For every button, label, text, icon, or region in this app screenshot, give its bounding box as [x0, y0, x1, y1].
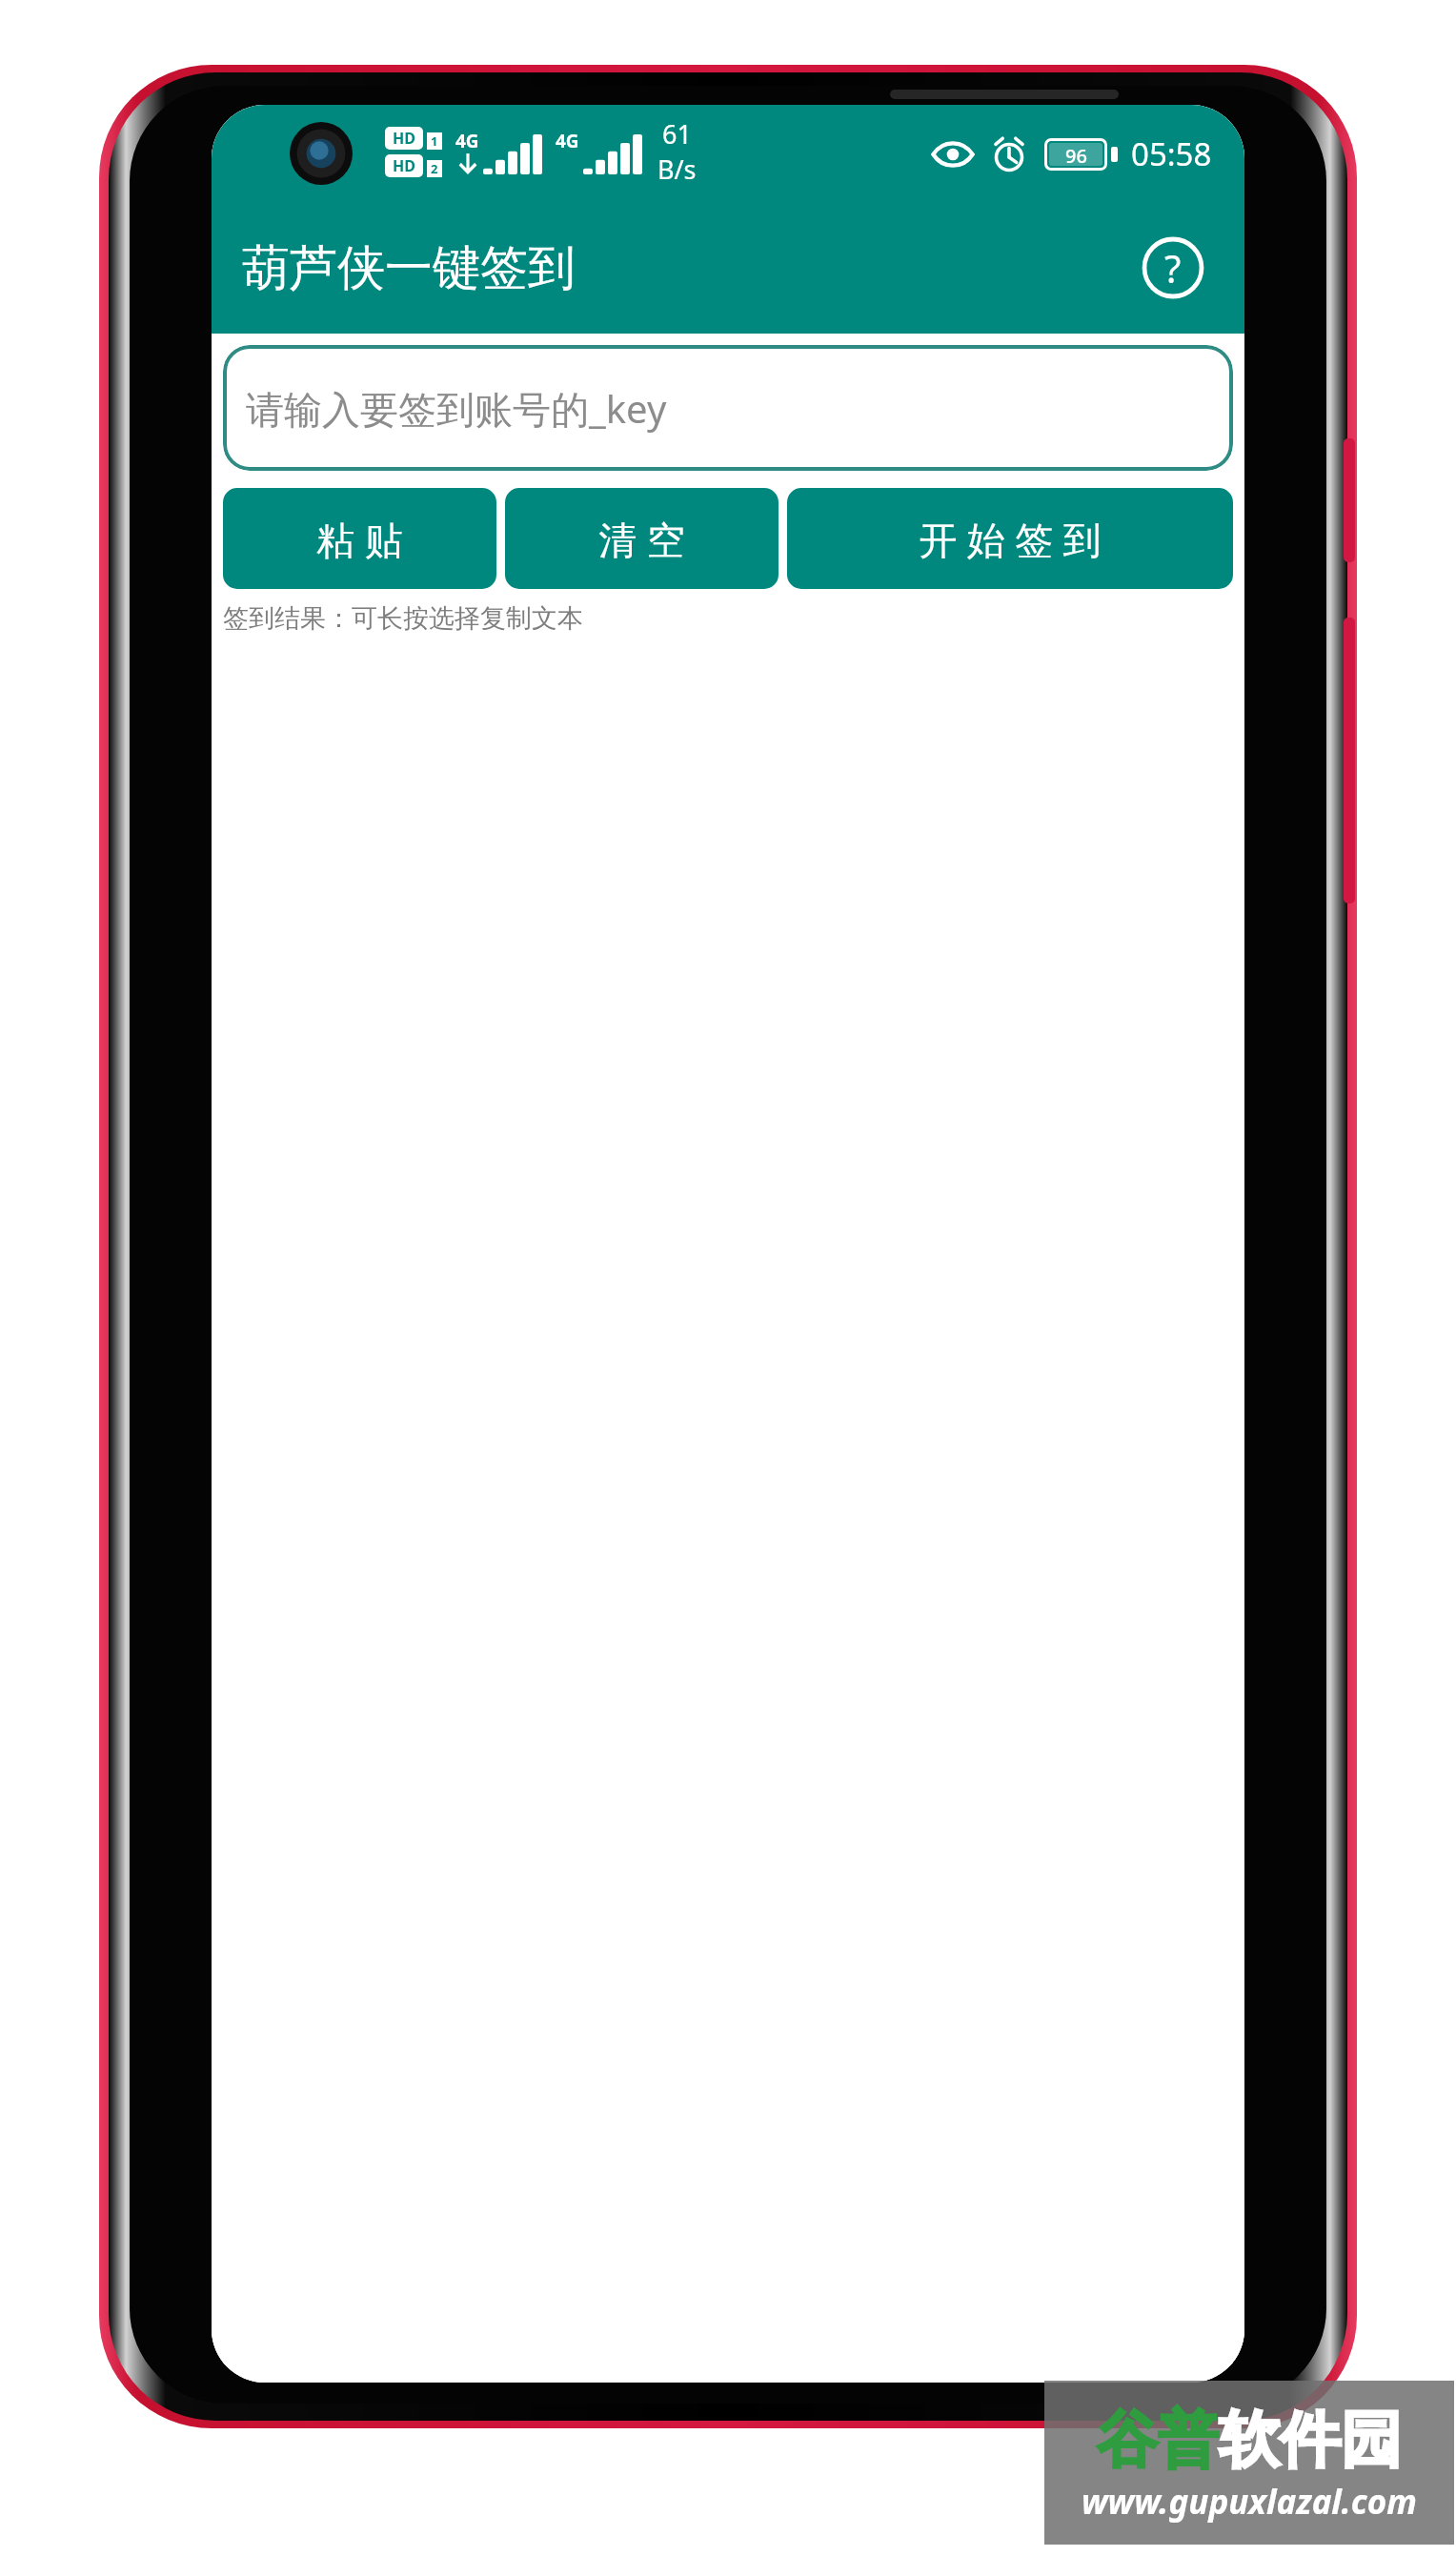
staticText: 61 — [662, 116, 692, 152]
staticText: 2 — [431, 160, 438, 177]
staticText: ? — [1164, 242, 1182, 294]
staticText: 签到结果：可长按选择复制文本 — [223, 602, 583, 635]
staticText: 清 空 — [598, 513, 685, 565]
staticText: HD — [393, 155, 415, 176]
staticText: 4G — [556, 129, 579, 153]
staticText: B/s — [657, 152, 697, 187]
button[interactable]: 开 始 签 到 — [787, 488, 1233, 589]
button[interactable]: Help — [1134, 229, 1212, 307]
button[interactable]: 清 空 — [505, 488, 779, 589]
staticText: 软件园 — [1219, 2402, 1402, 2479]
button[interactable]: 粘 贴 — [223, 488, 496, 589]
staticText: HD — [393, 128, 415, 149]
staticText: 开 始 签 到 — [919, 513, 1102, 565]
staticText: 请输入要签到账号的_key — [246, 382, 667, 435]
staticText: 1 — [431, 132, 438, 150]
staticText: 粘 贴 — [316, 513, 403, 565]
button[interactable]: 请输入要签到账号的_key — [223, 345, 1233, 471]
staticText: 96 — [1065, 143, 1087, 166]
staticText: 谷普 — [1097, 2402, 1219, 2479]
staticText: 葫芦侠一键签到 — [242, 238, 576, 298]
staticText: www.gupuxlazal.com — [1082, 2479, 1417, 2525]
staticText: 05:58 — [1131, 132, 1212, 175]
staticText: 4G — [455, 129, 479, 153]
